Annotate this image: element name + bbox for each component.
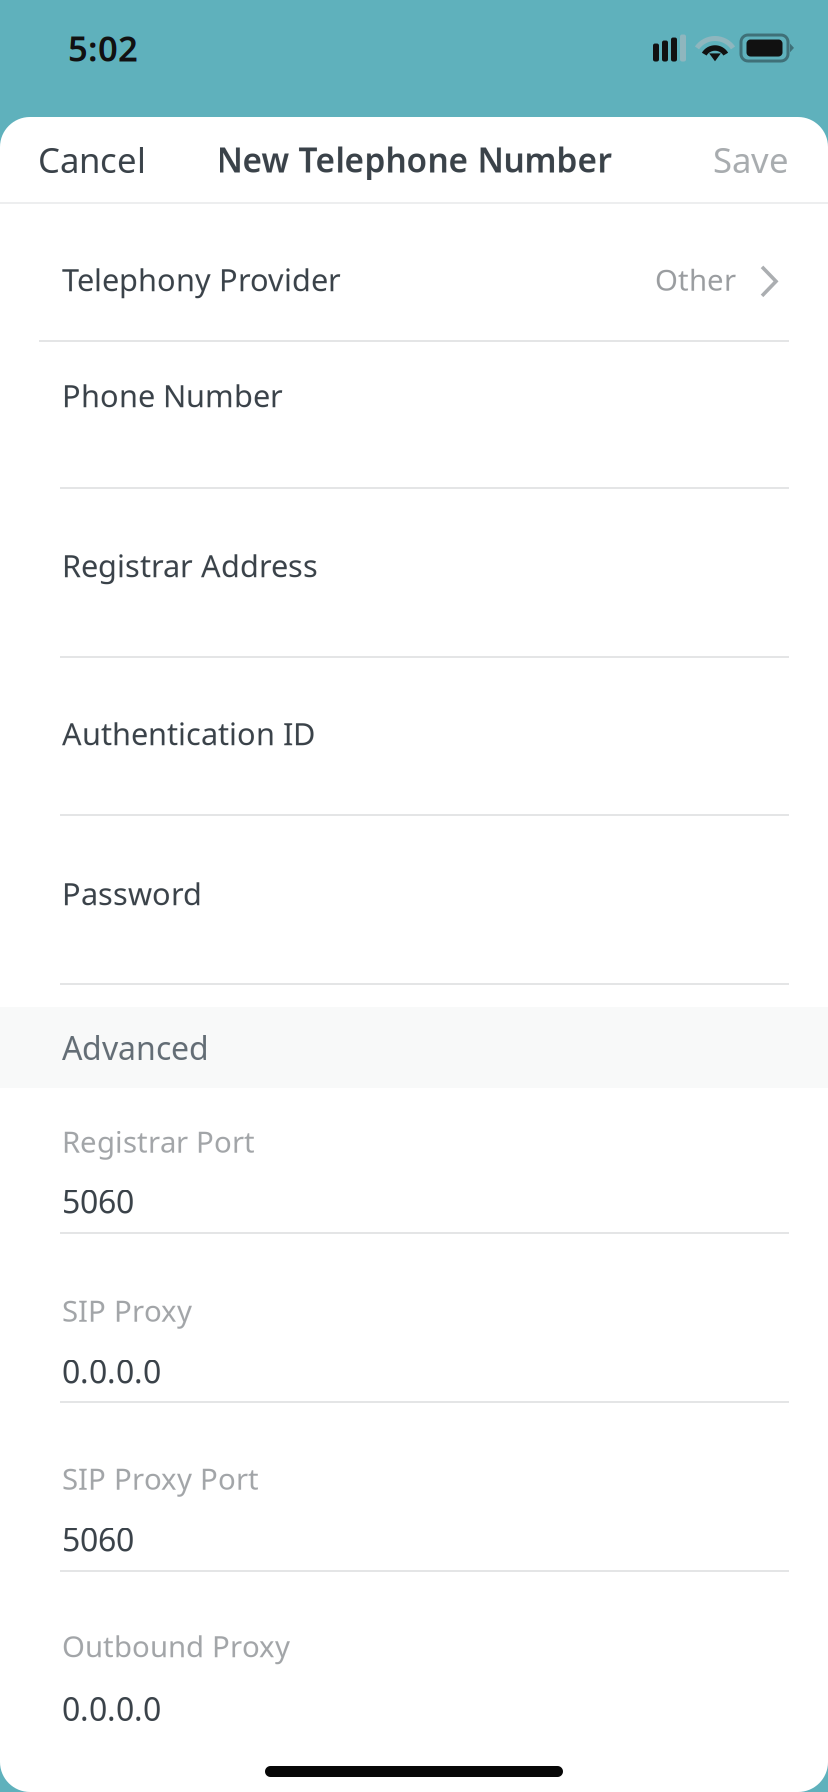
staticText: Password bbox=[62, 873, 202, 914]
staticText: Save bbox=[713, 136, 789, 182]
button[interactable]: Cancel bbox=[0, 117, 164, 202]
staticText: 0.0.0.0 bbox=[62, 1350, 161, 1392]
staticText: Advanced bbox=[62, 1026, 209, 1069]
staticText: Other bbox=[655, 260, 736, 299]
staticText: New Telephone Number bbox=[216, 137, 611, 182]
staticText: 5:02 bbox=[68, 25, 138, 71]
button[interactable]: Authentication ID bbox=[0, 658, 828, 816]
button[interactable]: Outbound Proxy bbox=[0, 1572, 828, 1717]
staticText: 5060 bbox=[62, 1518, 134, 1560]
button[interactable]: SIP Proxy bbox=[0, 1234, 828, 1403]
button[interactable]: Registrar Port bbox=[0, 1088, 828, 1234]
staticText: SIP Proxy Port bbox=[62, 1459, 259, 1498]
staticText: Registrar Port bbox=[62, 1122, 255, 1161]
staticText: Cancel bbox=[38, 136, 146, 182]
button[interactable]: Phone Number bbox=[0, 342, 828, 489]
staticText: Telephony Provider bbox=[62, 259, 341, 300]
button[interactable]: Registrar Address bbox=[0, 489, 828, 658]
button[interactable]: SIP Proxy Port bbox=[0, 1403, 828, 1572]
button[interactable]: Telephony Provider bbox=[0, 204, 828, 342]
staticText: Registrar Address bbox=[62, 545, 318, 586]
staticText: SIP Proxy bbox=[62, 1291, 192, 1330]
staticText: 5060 bbox=[62, 1180, 134, 1222]
staticText: Outbound Proxy bbox=[62, 1626, 290, 1665]
button[interactable]: Save bbox=[695, 117, 828, 202]
staticText: 0.0.0.0 bbox=[62, 1687, 161, 1730]
staticText: Authentication ID bbox=[62, 713, 315, 754]
button[interactable]: Password bbox=[0, 816, 828, 985]
staticText: Phone Number bbox=[62, 375, 283, 416]
